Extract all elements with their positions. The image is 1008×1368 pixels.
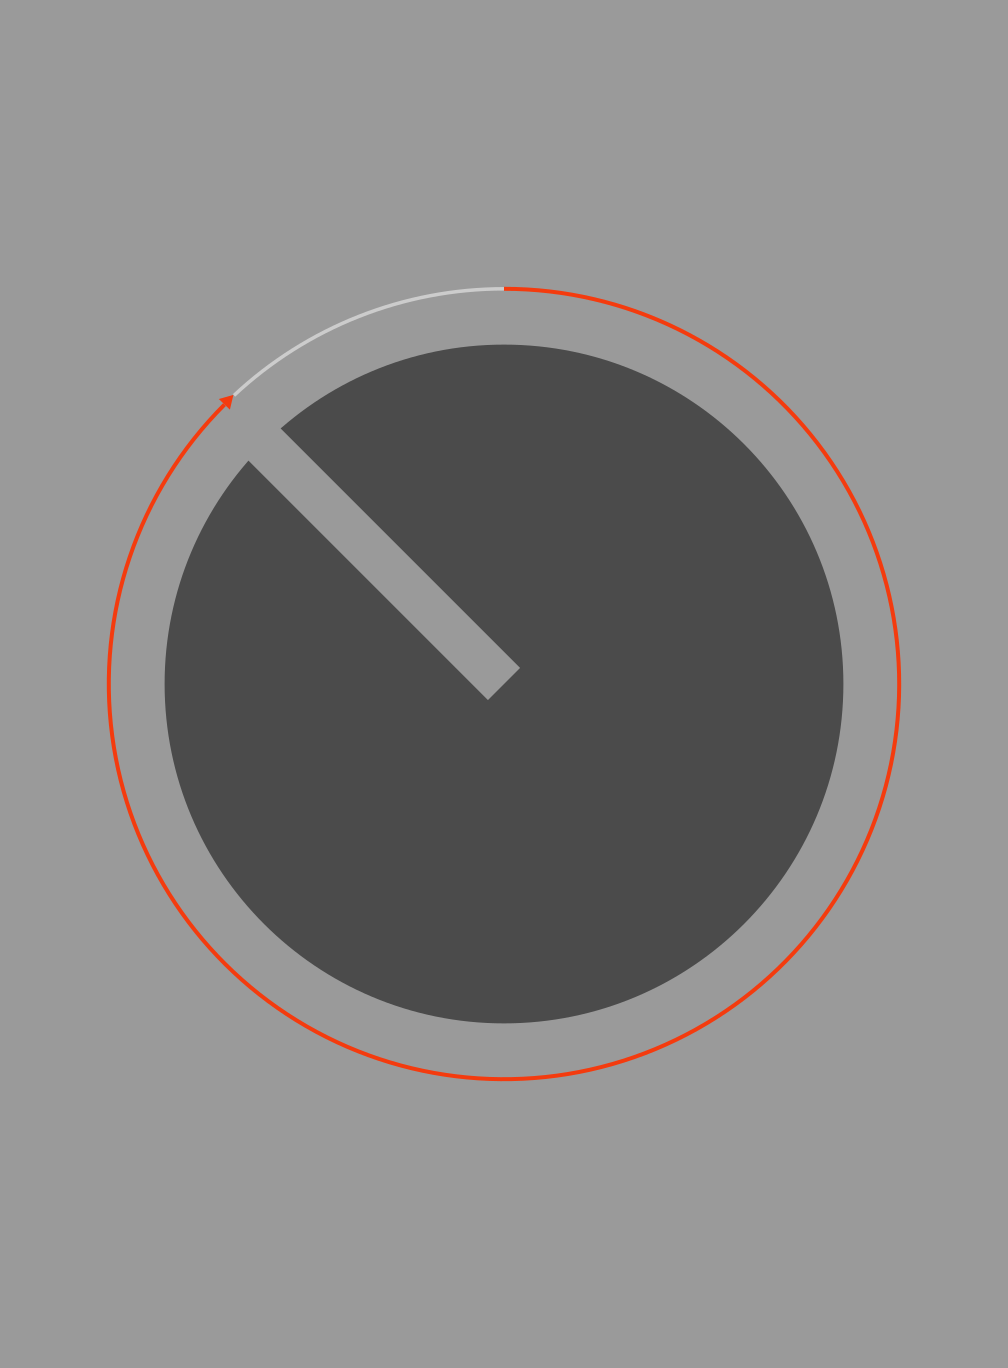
button[interactable]: Rotate dial: [109, 289, 899, 1079]
